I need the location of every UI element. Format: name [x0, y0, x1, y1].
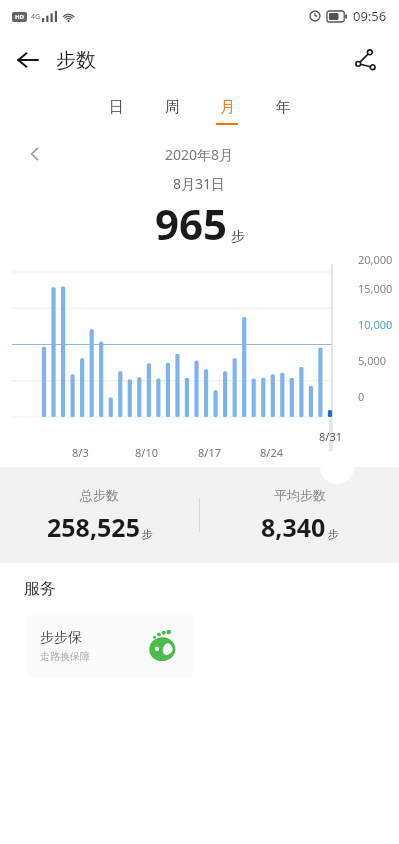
staticText: 8月31日: [173, 174, 226, 193]
staticText: 年: [276, 98, 291, 117]
staticText: 0: [358, 389, 365, 404]
button[interactable]: 月: [207, 88, 247, 134]
button[interactable]: 日: [96, 88, 136, 134]
staticText: 2020年8月: [165, 145, 234, 164]
staticText: 20,000: [358, 252, 393, 267]
staticText: 15,000: [358, 281, 393, 296]
staticText: 步: [142, 527, 153, 541]
button[interactable]: 年: [263, 88, 303, 134]
button[interactable]: Previous month: [18, 137, 52, 171]
button[interactable]: 步步保: [26, 614, 194, 678]
staticText: 步: [328, 527, 339, 541]
staticText: 8/3: [72, 445, 89, 460]
staticText: 4G: [31, 12, 41, 22]
staticText: 5,000: [358, 353, 387, 368]
staticText: 日: [109, 98, 124, 117]
staticText: 258,525: [47, 510, 140, 544]
staticText: 周: [165, 98, 180, 117]
staticText: 965: [155, 195, 228, 252]
staticText: 步: [231, 228, 245, 246]
staticText: 步数: [56, 48, 96, 73]
staticText: 10,000: [358, 317, 393, 332]
staticText: 月: [220, 98, 235, 117]
button[interactable]: Share: [341, 36, 389, 84]
staticText: 服务: [24, 579, 56, 599]
staticText: 8,340: [261, 510, 326, 544]
button[interactable]: 周: [152, 88, 192, 134]
staticText: 09:56: [353, 7, 387, 25]
staticText: 8/24: [260, 445, 283, 460]
staticText: 走路换保障: [40, 650, 90, 663]
staticText: 步步保: [40, 629, 82, 647]
staticText: 总步数: [80, 487, 119, 503]
staticText: 8/10: [135, 445, 158, 460]
staticText: 8/17: [198, 445, 221, 460]
staticText: HD: [15, 13, 24, 21]
staticText: 8/31: [319, 429, 342, 444]
staticText: 平均步数: [274, 487, 326, 503]
button[interactable]: Back: [0, 32, 56, 88]
